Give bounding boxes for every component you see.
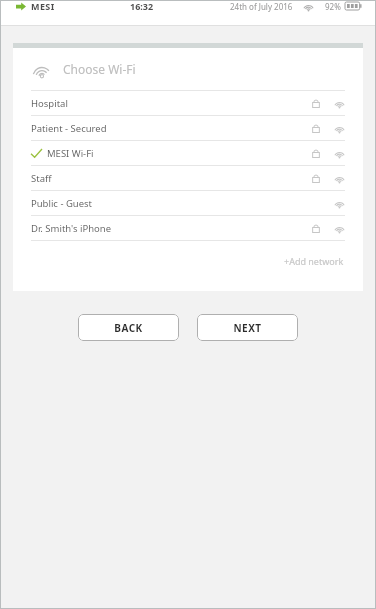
staticText: Patient - Secured (31, 122, 107, 135)
staticText: MESI (31, 0, 55, 12)
staticText: 16:32 (130, 0, 154, 12)
button[interactable]: +Add network (282, 253, 346, 269)
staticText: Hospital (31, 97, 68, 110)
staticText: NEXT (233, 321, 262, 335)
button[interactable]: NEXT (197, 314, 298, 341)
button[interactable]: Staff (13, 166, 363, 190)
staticText: Dr. Smith's iPhone (31, 222, 112, 235)
staticText: +Add network (284, 255, 344, 267)
staticText: Staff (31, 172, 52, 185)
staticText: Public - Guest (31, 197, 93, 210)
button[interactable]: Public - Guest (13, 191, 363, 215)
button[interactable]: Patient - Secured (13, 116, 363, 140)
button[interactable]: BACK (78, 314, 179, 341)
button[interactable]: Hospital (13, 91, 363, 115)
button[interactable]: Choose Wi-Fi (13, 48, 363, 90)
staticText: BACK (114, 321, 143, 335)
staticText: MESI Wi-Fi (47, 147, 94, 160)
staticText: 92% (325, 1, 341, 12)
button[interactable]: Dr. Smith's iPhone (13, 216, 363, 240)
button[interactable]: MESI Wi-Fi (13, 141, 363, 165)
staticText: Choose Wi-Fi (63, 61, 136, 77)
staticText: 24th of July 2016 (230, 1, 293, 12)
